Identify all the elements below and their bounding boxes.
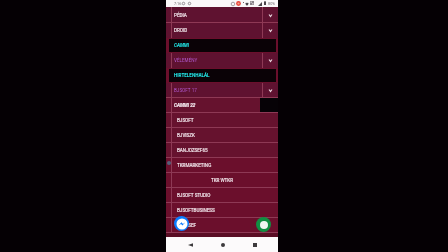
button[interactable]: BJSOFT [166, 113, 278, 128]
staticText: PÉDIA [174, 13, 187, 18]
button[interactable]: BJSOFTBUSINESS [166, 203, 278, 218]
button[interactable]: TKR WTKR [166, 173, 278, 188]
staticText: BJSOFTBUSINESS [177, 208, 215, 213]
button[interactable]: BANJOZSEF65 [166, 143, 278, 158]
staticText: BJSOFT [177, 118, 194, 123]
staticText: TKR WTKR [166, 178, 278, 183]
button[interactable]: WhatsApp chat head [256, 217, 271, 232]
staticText: BANJOZSEF65 [177, 148, 208, 153]
button[interactable]: Back [184, 239, 196, 251]
button[interactable]: Recents [249, 239, 261, 251]
button[interactable]: TKRMARKETING [166, 158, 278, 173]
button[interactable]: HIRTELENHALÁL [166, 68, 278, 83]
staticText: BJVISZK [177, 133, 195, 138]
button[interactable]: Messenger chat head [174, 216, 189, 231]
button[interactable]: BJSOFT STUDIO [166, 188, 278, 203]
button[interactable]: BJSOFT 17 [166, 83, 278, 98]
button[interactable]: DROID [166, 23, 278, 38]
staticText: BJSOFT 17 [174, 88, 197, 93]
button[interactable]: BJVISZK [166, 128, 278, 143]
button[interactable]: VÉLEMÉNY [166, 53, 278, 68]
staticText: BJSOFT STUDIO [177, 193, 211, 198]
staticText: DROID [174, 28, 188, 33]
staticText: 80% [268, 1, 276, 5]
staticText: TKRMARKETING [177, 163, 212, 168]
staticText: CAMMI 22 [174, 103, 196, 108]
staticText: HIRTELENHALÁL [174, 73, 210, 78]
staticText: VÉLEMÉNY [174, 58, 198, 63]
button[interactable]: Expand [262, 83, 278, 98]
staticText: CAMMI [174, 43, 190, 48]
button[interactable]: CAMMI 22 [166, 98, 278, 113]
button[interactable]: Home [217, 239, 229, 251]
button[interactable]: Expand [262, 53, 278, 68]
button[interactable]: CAMMI [166, 38, 278, 53]
button[interactable]: Chat bubble [167, 161, 171, 165]
button[interactable]: PÉDIA [166, 7, 278, 23]
staticText: BJOZSEF [177, 223, 197, 228]
staticText: 7:16 [174, 1, 182, 5]
button[interactable]: BJOZSEF [166, 218, 278, 233]
button[interactable]: Expand [262, 23, 278, 38]
button[interactable]: Expand [262, 7, 278, 23]
